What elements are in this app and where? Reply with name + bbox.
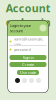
staticText: password <box>13 47 30 52</box>
button[interactable]: Use code <box>17 70 39 75</box>
button[interactable]: Sign in with email <box>36 78 41 83</box>
staticText: Use code <box>20 70 36 75</box>
staticText: Login to your account <box>9 23 31 33</box>
button[interactable]: Sign in with Google <box>22 78 27 83</box>
button[interactable]: Sign in with Apple <box>15 78 20 83</box>
staticText: name@example.com <box>13 36 43 47</box>
button[interactable]: Create <box>9 62 46 67</box>
button[interactable]: Sign in with Facebook <box>29 78 34 83</box>
button[interactable]: Sign in <box>9 55 46 60</box>
staticText: Sign in <box>22 55 33 60</box>
staticText: Create Account or Login <box>5 0 50 29</box>
staticText: Create <box>22 62 34 67</box>
